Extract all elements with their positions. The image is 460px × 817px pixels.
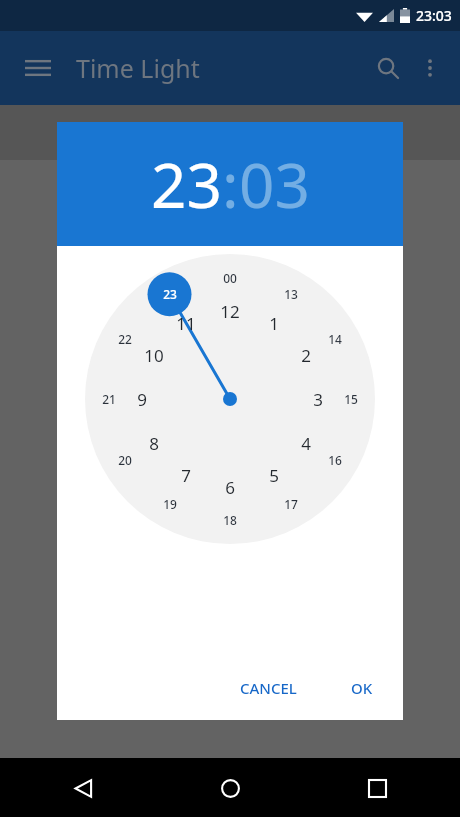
staticText: 9 [137,388,147,411]
button[interactable]: CANCEL [228,670,309,706]
staticText: : [222,142,239,226]
staticText: 18 [223,512,237,528]
staticText: 23 [163,286,177,302]
button[interactable]: 23 [151,142,222,226]
staticText: 00 [223,270,237,286]
staticText: 20 [118,452,132,468]
staticText: 19 [163,496,177,512]
staticText: 17 [284,496,298,512]
staticText: 11 [176,312,196,335]
staticText: 21 [102,391,116,407]
staticText: 2 [301,344,311,367]
staticText: 14 [328,331,342,347]
button[interactable]: Search [366,46,410,90]
staticText: 4 [301,432,311,455]
button[interactable]: More options [410,48,450,88]
staticText: 13 [284,286,298,302]
staticText: 23:03 [416,6,452,25]
staticText: 22 [118,331,132,347]
staticText: 1 [269,312,279,335]
staticText: 6 [225,476,235,499]
staticText: 5 [269,464,279,487]
staticText: OK [351,678,373,698]
staticText: 10 [144,344,164,367]
button[interactable]: 03 [239,142,310,226]
staticText: Time Light [76,51,200,85]
staticText: 3 [313,388,323,411]
staticText: 15 [344,391,358,407]
button[interactable]: Back [60,765,106,811]
button[interactable]: Recent apps [354,765,400,811]
button[interactable]: Open navigation drawer [18,48,58,88]
staticText: 12 [220,300,240,323]
staticText: 8 [149,432,159,455]
button[interactable]: OK [339,670,385,706]
button[interactable]: Home [207,765,253,811]
staticText: CANCEL [240,678,297,698]
staticText: 16 [328,452,342,468]
staticText: 7 [181,464,191,487]
